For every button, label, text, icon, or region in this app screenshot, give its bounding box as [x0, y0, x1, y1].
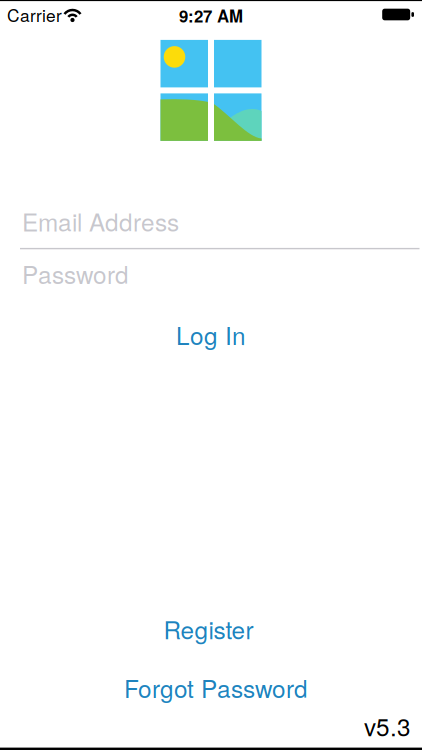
- staticText: Password: [22, 256, 129, 291]
- staticText: Carrier: [7, 2, 62, 27]
- button[interactable]: Password: [0, 256, 422, 290]
- staticText: Forgot Password: [124, 670, 308, 705]
- staticText: v5.3: [364, 708, 411, 743]
- staticText: Log In: [176, 317, 246, 352]
- button[interactable]: Forgot Password: [124, 670, 308, 704]
- button[interactable]: Register: [163, 612, 253, 646]
- button[interactable]: Log In: [176, 317, 246, 351]
- button[interactable]: Email Address: [0, 204, 422, 238]
- staticText: Register: [163, 611, 253, 646]
- staticText: Email Address: [22, 204, 179, 238]
- staticText: 9:27 AM: [179, 4, 243, 28]
